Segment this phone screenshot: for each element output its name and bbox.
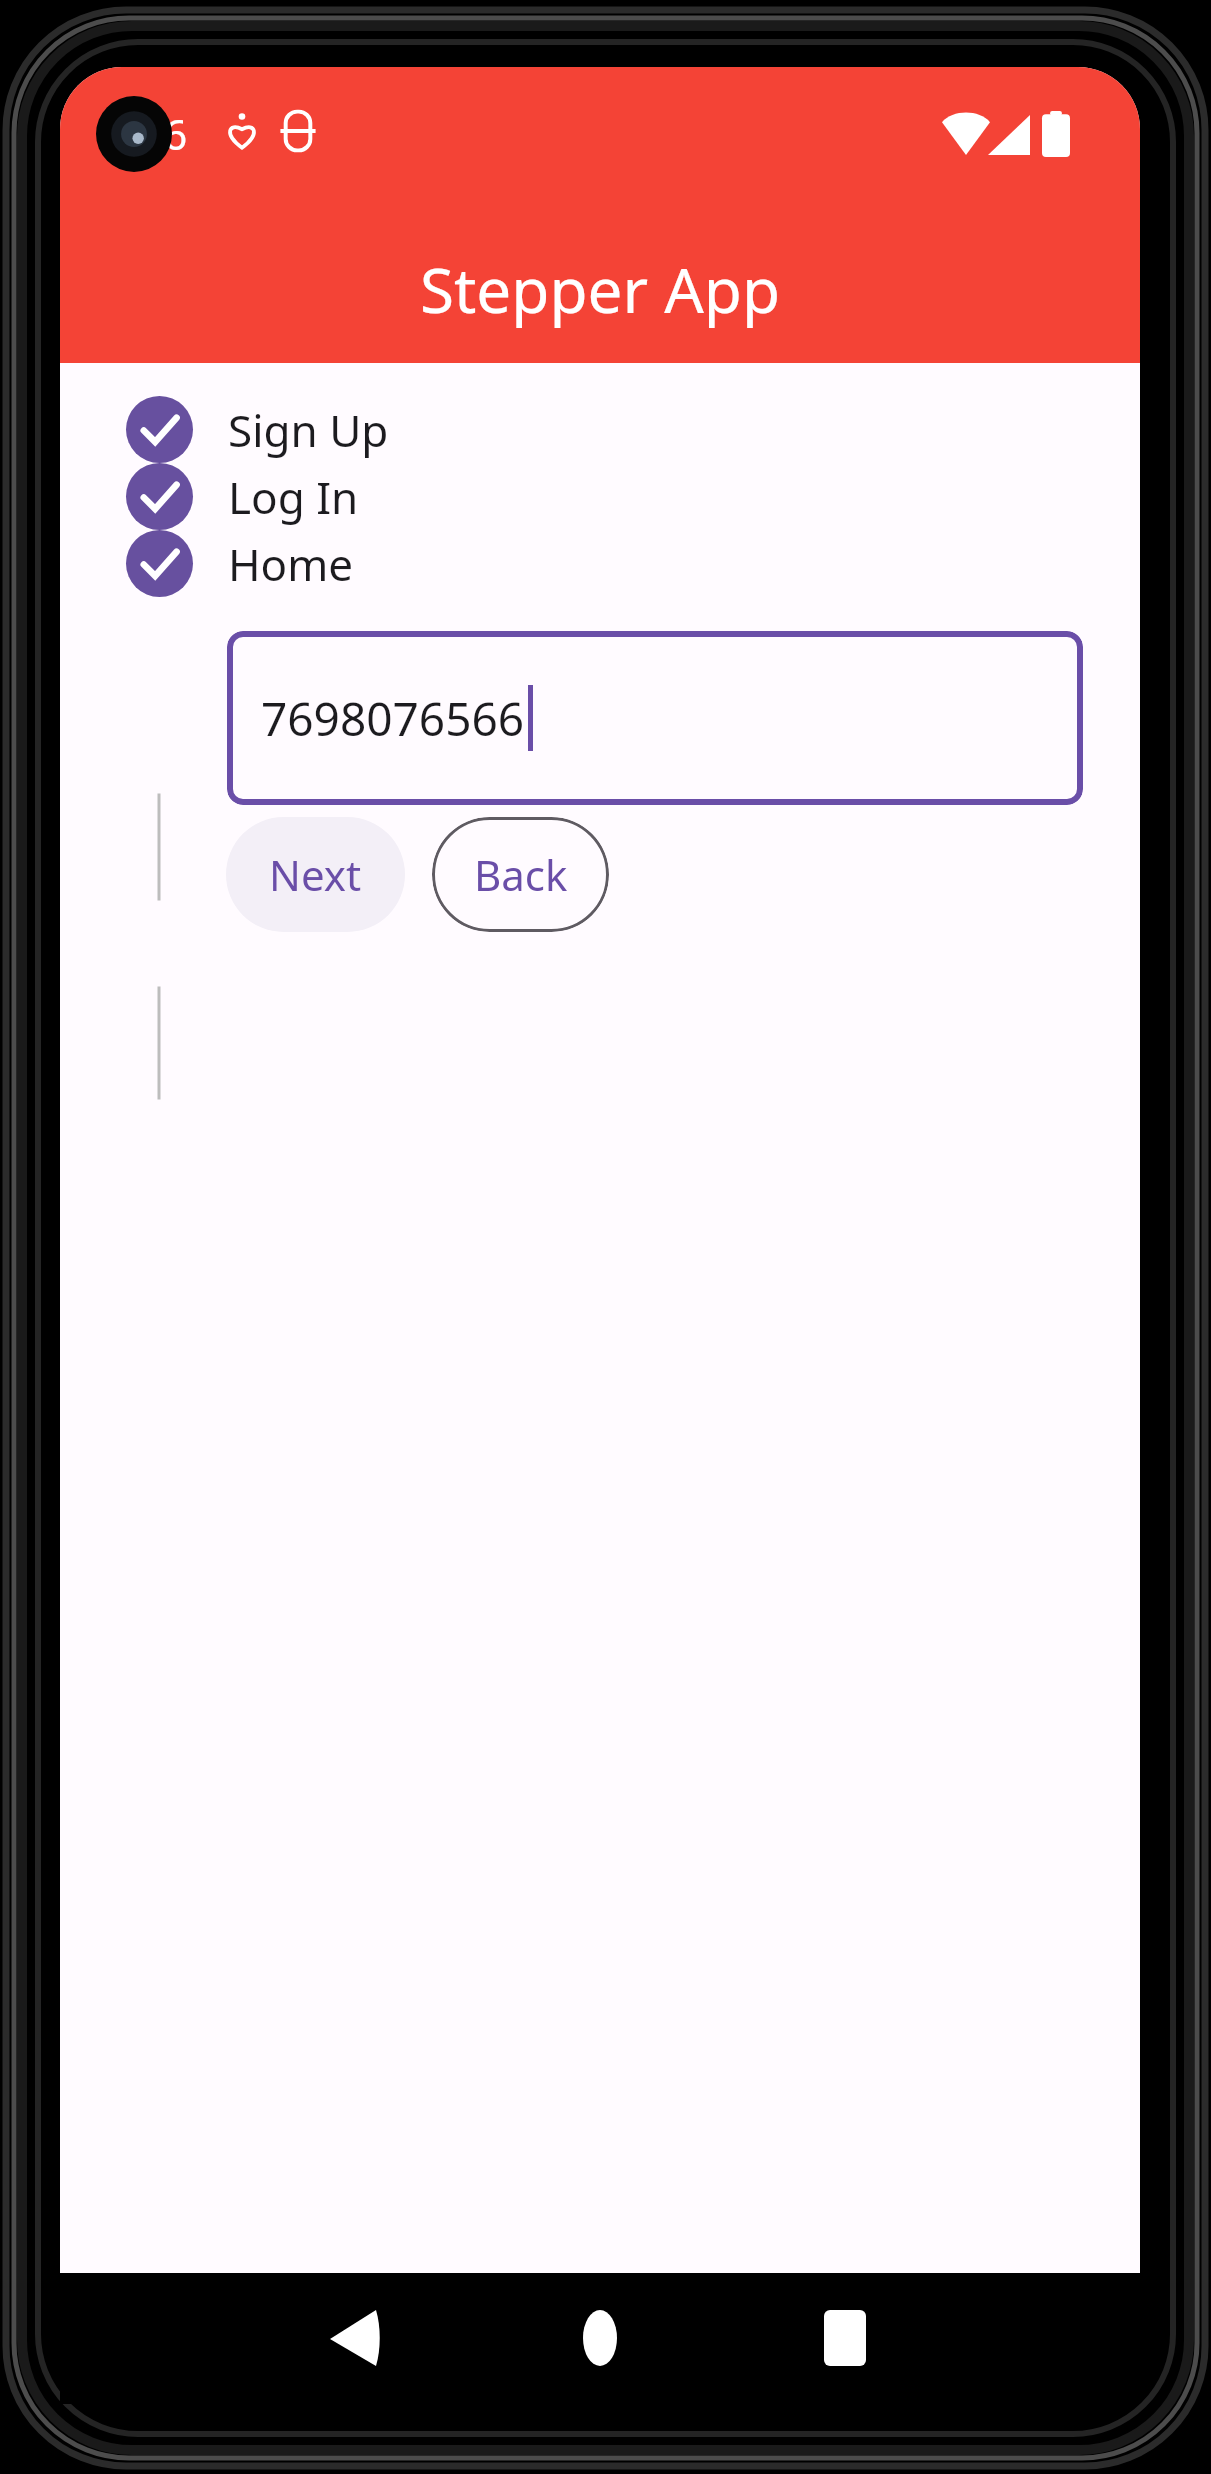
staticText: Sign Up: [228, 400, 389, 460]
button[interactable]: Log In: [60, 463, 1140, 530]
button[interactable]: Next: [226, 817, 405, 932]
button[interactable]: Sign Up: [60, 396, 1140, 463]
staticText: Home: [228, 534, 354, 594]
staticText: Stepper App: [60, 247, 1140, 331]
button[interactable]: 7698076566: [227, 631, 1083, 805]
button[interactable]: Back: [432, 817, 609, 932]
staticText: Next: [269, 846, 362, 903]
button[interactable]: Back: [310, 2293, 400, 2383]
staticText: Back: [474, 846, 568, 903]
button[interactable]: Home: [60, 530, 1140, 597]
button[interactable]: Recent apps: [800, 2293, 890, 2383]
staticText: 7698076566: [261, 687, 525, 750]
button[interactable]: Home: [555, 2293, 645, 2383]
staticText: 2:36: [104, 105, 188, 162]
staticText: Log In: [228, 467, 359, 527]
